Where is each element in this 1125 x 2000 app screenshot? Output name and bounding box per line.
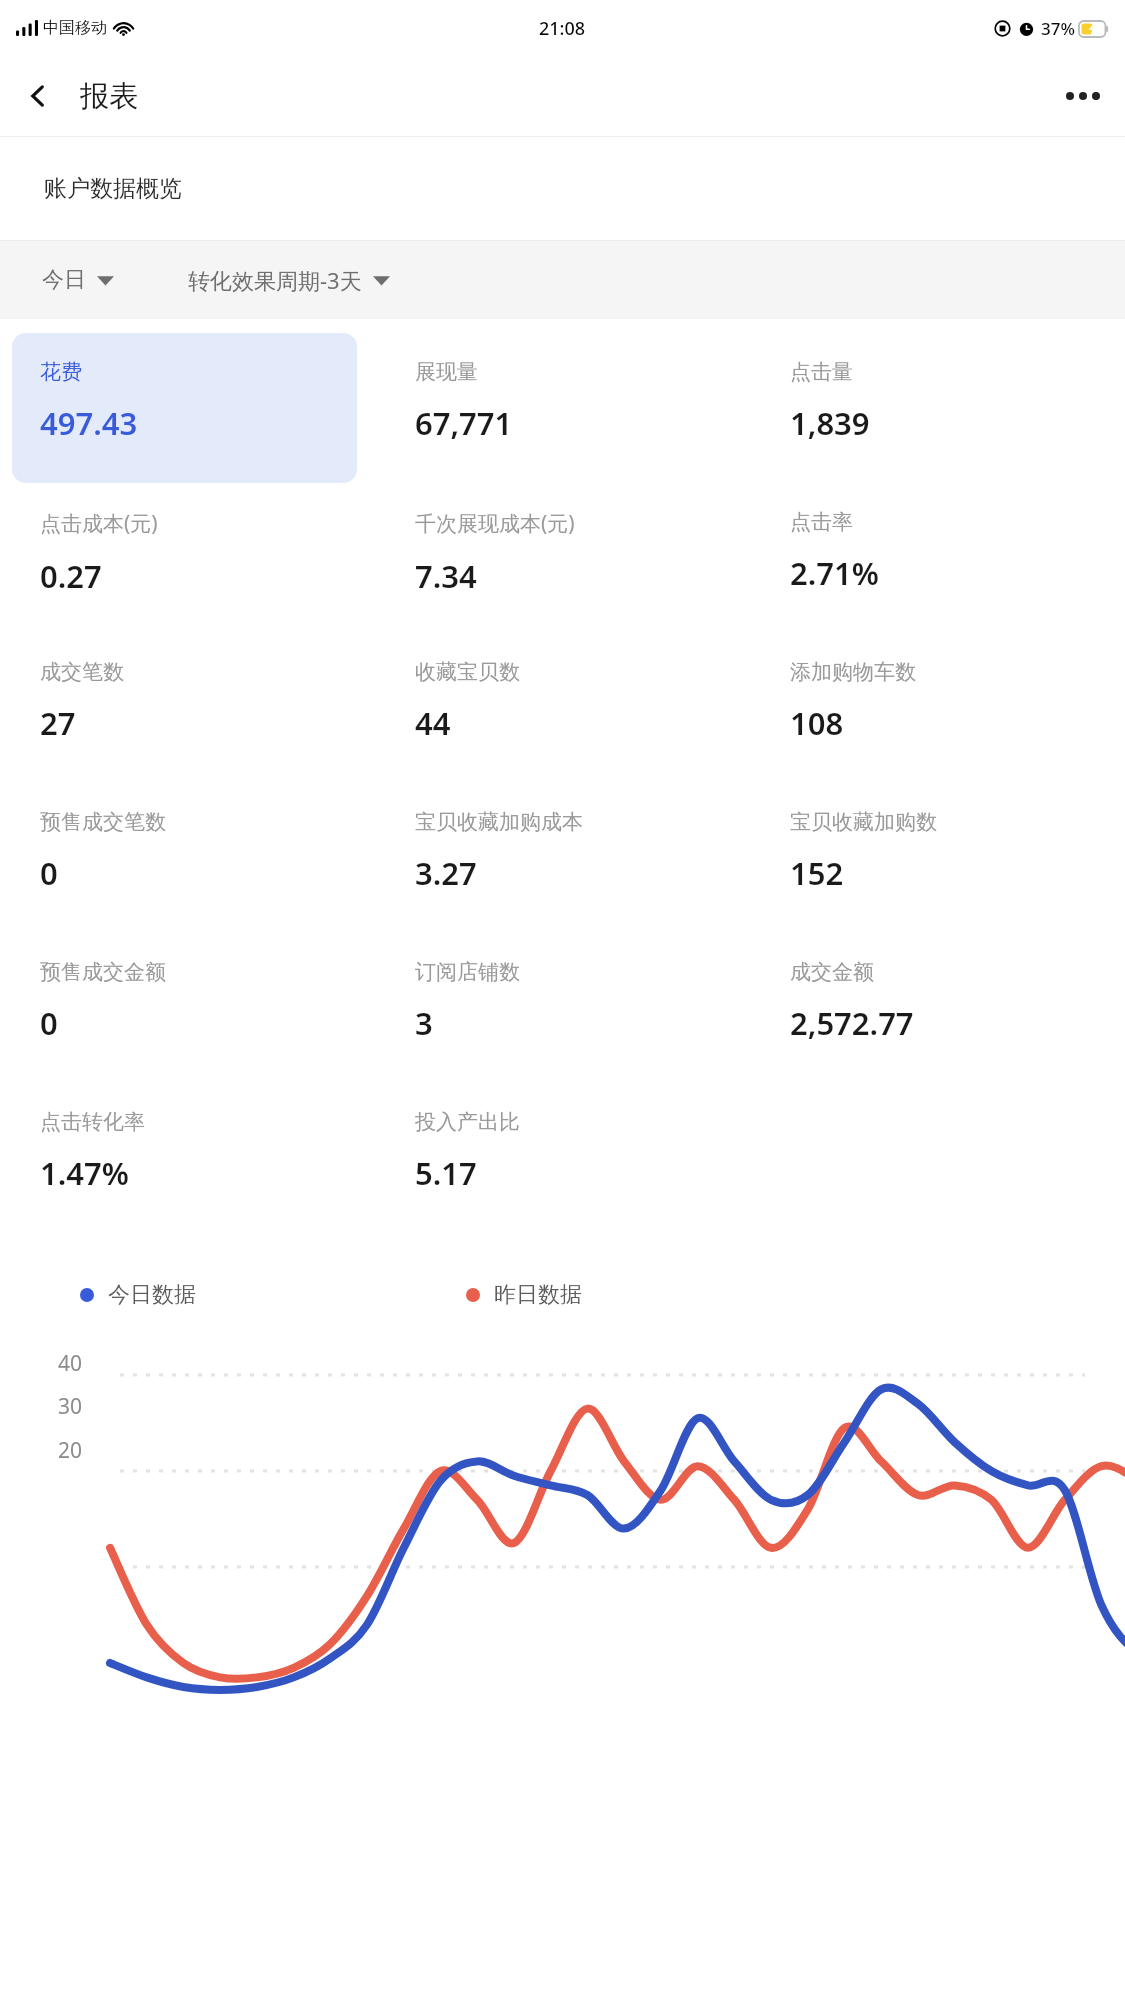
staticText: 20 <box>58 1436 83 1465</box>
staticText: 0 <box>40 852 58 894</box>
staticText: 中国移动 <box>43 18 107 38</box>
button[interactable]: 今日数据 <box>80 1281 196 1309</box>
staticText: 27 <box>40 702 76 744</box>
staticText: 7.34 <box>415 555 477 597</box>
staticText: 2,572.77 <box>790 1002 914 1044</box>
button[interactable]: 订阅店铺数 <box>375 933 750 1083</box>
staticText: 2.71% <box>790 552 879 594</box>
staticText: 37% <box>1041 17 1075 40</box>
staticText: 今日 <box>42 266 86 294</box>
staticText: 1.47% <box>40 1152 129 1194</box>
staticText: 点击量 <box>790 359 853 385</box>
staticText: 账户数据概览 <box>44 174 182 203</box>
button[interactable]: 预售成交金额 <box>0 933 375 1083</box>
staticText: 5.17 <box>415 1152 477 1194</box>
staticText: 预售成交笔数 <box>40 809 166 835</box>
button[interactable]: 宝贝收藏加购数 <box>750 783 1125 933</box>
button[interactable]: 昨日数据 <box>466 1281 582 1309</box>
staticText: 昨日数据 <box>494 1281 582 1309</box>
staticText: 订阅店铺数 <box>415 959 520 985</box>
button[interactable]: 点击转化率 <box>0 1083 375 1233</box>
button[interactable]: 宝贝收藏加购成本 <box>375 783 750 933</box>
staticText: 30 <box>58 1392 83 1421</box>
staticText: 40 <box>58 1349 83 1378</box>
staticText: 点击转化率 <box>40 1109 145 1135</box>
button[interactable]: 今日 <box>40 260 116 300</box>
button[interactable]: 点击量 <box>750 333 1125 483</box>
staticText: 收藏宝贝数 <box>415 659 520 685</box>
staticText: 0.27 <box>40 555 102 597</box>
staticText: 点击成本(元) <box>40 509 158 538</box>
button[interactable]: 添加购物车数 <box>750 633 1125 783</box>
staticText: 千次展现成本(元) <box>415 509 575 538</box>
staticText: 成交笔数 <box>40 659 124 685</box>
button[interactable]: More options <box>1055 68 1111 124</box>
staticText: 3.27 <box>415 852 477 894</box>
staticText: 21:08 <box>539 16 586 41</box>
button[interactable]: 成交笔数 <box>0 633 375 783</box>
staticText: 1,839 <box>790 402 870 444</box>
button[interactable]: 点击率 <box>750 483 1125 633</box>
button[interactable]: 点击成本(元) <box>0 483 375 633</box>
staticText: 展现量 <box>415 359 478 385</box>
staticText: 3 <box>415 1002 433 1044</box>
staticText: 宝贝收藏加购数 <box>790 809 937 835</box>
staticText: 投入产出比 <box>415 1109 520 1135</box>
staticText: 108 <box>790 702 844 744</box>
staticText: 152 <box>790 852 844 894</box>
staticText: 67,771 <box>415 402 513 444</box>
button[interactable]: 预售成交笔数 <box>0 783 375 933</box>
button[interactable]: 展现量 <box>375 333 750 483</box>
staticText: 0 <box>40 1002 58 1044</box>
button[interactable]: 转化效果周期-3天 <box>186 259 392 301</box>
staticText: 转化效果周期-3天 <box>188 265 362 295</box>
staticText: 成交金额 <box>790 959 874 985</box>
staticText: 44 <box>415 702 451 744</box>
staticText: 预售成交金额 <box>40 959 166 985</box>
button[interactable]: 成交金额 <box>750 933 1125 1083</box>
staticText: 点击率 <box>790 509 853 535</box>
staticText: 报表 <box>80 78 138 115</box>
staticText: 今日数据 <box>108 1281 196 1309</box>
button[interactable]: 收藏宝贝数 <box>375 633 750 783</box>
button[interactable]: 花费 <box>12 333 357 483</box>
button[interactable]: 投入产出比 <box>375 1083 750 1233</box>
staticText: 497.43 <box>40 402 138 444</box>
staticText: 宝贝收藏加购成本 <box>415 809 583 835</box>
button[interactable]: 账户数据概览 <box>0 137 1125 240</box>
staticText: 添加购物车数 <box>790 659 916 685</box>
staticText: 花费 <box>40 359 82 385</box>
button[interactable]: Back <box>10 68 66 124</box>
button[interactable]: 千次展现成本(元) <box>375 483 750 633</box>
